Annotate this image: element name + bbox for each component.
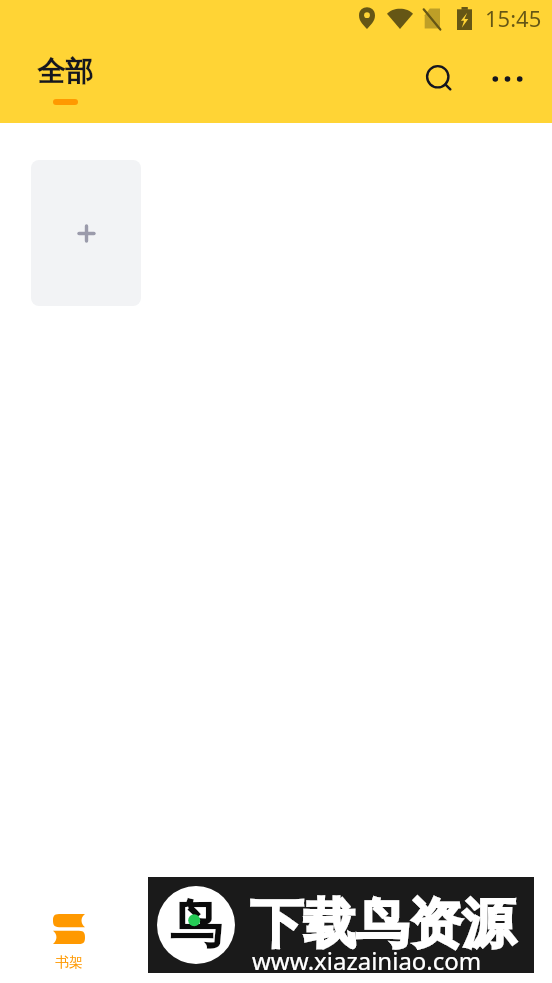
button[interactable]: Search [417, 56, 463, 102]
button[interactable]: 书架 [25, 900, 113, 983]
staticText: 15:45 [485, 3, 542, 33]
staticText: 书架 [55, 954, 83, 972]
button[interactable]: More options [484, 56, 530, 102]
staticText: 鸟 [170, 892, 222, 958]
button[interactable]: 全部 [21, 44, 109, 116]
button[interactable]: Add book [31, 160, 141, 306]
staticText: www.xiazainiao.com [252, 944, 482, 977]
staticText: 全部 [37, 54, 93, 89]
staticText: 下载鸟资源 [250, 891, 515, 958]
